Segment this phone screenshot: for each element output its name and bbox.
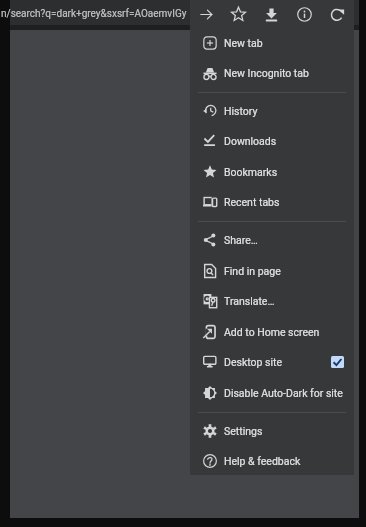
staticText: Help & feedback <box>224 455 301 467</box>
staticText: Bookmarks <box>224 166 278 178</box>
staticText: Disable Auto-Dark for site <box>224 387 343 399</box>
staticText: Add to Home screen <box>224 326 320 338</box>
staticText: Settings <box>224 425 263 437</box>
button[interactable]: Bookmark this page <box>222 0 255 28</box>
button[interactable]: Find in page <box>190 256 354 286</box>
staticText: Recent tabs <box>224 196 280 208</box>
button[interactable]: Page info <box>288 0 321 28</box>
button[interactable]: Translate… <box>190 286 354 316</box>
staticText: Desktop site <box>224 356 282 368</box>
staticText: New tab <box>224 37 263 49</box>
button[interactable]: Settings <box>190 416 354 446</box>
button[interactable]: Reload <box>321 0 354 28</box>
button[interactable]: Bookmarks <box>190 157 354 187</box>
staticText: Find in page <box>224 265 281 277</box>
button[interactable]: Download page <box>255 0 288 28</box>
button[interactable]: Disable Auto-Dark for site <box>190 378 354 408</box>
button[interactable]: Add to Home screen <box>190 317 354 347</box>
staticText: n/search?q=dark+grey&sxsrf=AOaemvIGy <box>1 8 187 20</box>
button[interactable]: Desktop site <box>190 347 354 377</box>
button[interactable]: New tab <box>190 28 354 58</box>
button[interactable]: Forward <box>190 0 222 28</box>
button[interactable]: Help & feedback <box>190 446 354 476</box>
button[interactable]: Downloads <box>190 126 354 156</box>
staticText: Downloads <box>224 135 277 147</box>
staticText: New Incognito tab <box>224 67 309 79</box>
staticText: Translate… <box>224 295 275 307</box>
button[interactable]: History <box>190 96 354 126</box>
button[interactable]: New Incognito tab <box>190 58 354 88</box>
staticText: History <box>224 105 258 117</box>
staticText: Share… <box>224 234 258 246</box>
button[interactable]: Share… <box>190 225 354 255</box>
button[interactable]: Recent tabs <box>190 187 354 217</box>
